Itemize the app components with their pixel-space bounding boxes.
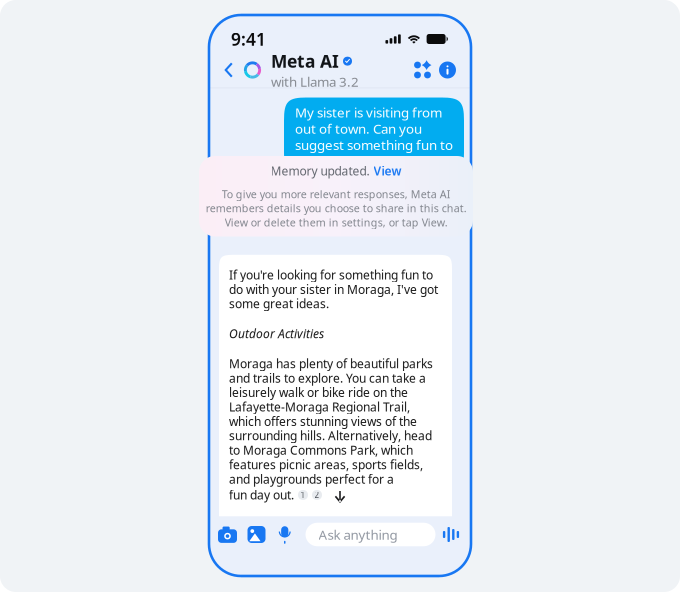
- staticText: fun day out.: [229, 487, 294, 503]
- button[interactable]: Camera: [220, 527, 235, 541]
- button[interactable]: Photos: [235, 527, 264, 541]
- staticText: Culture and Entertainment: [229, 517, 372, 533]
- button[interactable]: View: [373, 163, 401, 179]
- staticText: 1: [300, 490, 305, 500]
- button[interactable]: Voice message: [264, 526, 290, 542]
- staticText: Memory updated.: [270, 163, 369, 179]
- staticText: View: [373, 163, 401, 179]
- staticText: with Llama 3.2: [271, 73, 359, 90]
- staticText: My sister is visiting from out of town. …: [295, 103, 453, 170]
- button[interactable]: Citation 1: [298, 490, 308, 500]
- staticText: 2: [314, 490, 319, 500]
- staticText: Outdoor Activities: [229, 326, 324, 341]
- button[interactable]: Back: [209, 52, 243, 88]
- button[interactable]: Voice mode: [443, 527, 459, 542]
- button[interactable]: AI tools: [410, 57, 435, 82]
- staticText: If you're looking for something fun to d…: [229, 267, 438, 312]
- button[interactable]: Info: [435, 57, 471, 82]
- staticText: Ask anything: [318, 526, 397, 543]
- button[interactable]: Citation 2: [312, 490, 322, 500]
- staticText: Moraga has plenty of beautiful parks and…: [229, 356, 433, 487]
- button[interactable]: Scroll to bottom: [327, 484, 353, 510]
- staticText: To give you more relevant responses, Met…: [205, 187, 466, 229]
- staticText: If you're interested in art and culture,…: [229, 547, 435, 592]
- staticText: Meta AI: [271, 50, 339, 73]
- button[interactable]: Ask anything: [290, 523, 435, 546]
- staticText: 9:41: [231, 27, 266, 50]
